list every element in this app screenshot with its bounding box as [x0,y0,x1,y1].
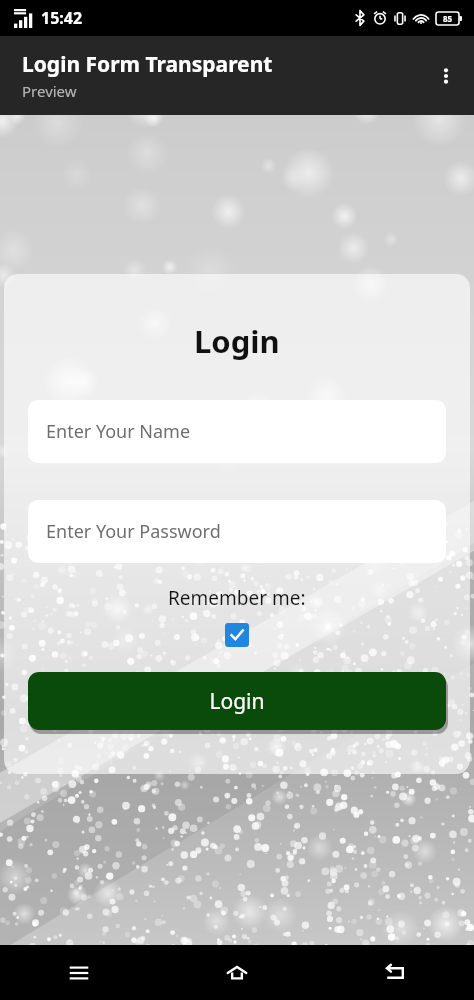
button[interactable]: Menu [0,945,158,1000]
staticText: Enter Your Password [46,519,221,544]
button[interactable]: Home [158,945,316,1000]
staticText: Login Form Transparent [22,50,273,79]
button[interactable]: Login [28,672,446,730]
staticText: Preview [22,81,77,101]
button[interactable]: Remember me checkbox [225,623,249,647]
staticText: 85 [443,13,453,24]
button[interactable]: Back [316,945,474,1000]
staticText: Login [209,687,265,716]
button[interactable]: More options [424,54,468,98]
staticText: Login [194,320,280,362]
staticText: Remember me: [168,585,306,611]
button[interactable]: Enter Your Password [28,500,446,563]
staticText: 15:42 [41,7,83,29]
staticText: Enter Your Name [46,419,191,444]
button[interactable]: Enter Your Name [28,400,446,463]
